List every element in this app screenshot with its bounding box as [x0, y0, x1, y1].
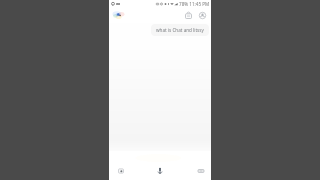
- button[interactable]: Account: [197, 10, 207, 20]
- button[interactable]: Voice search: [153, 164, 167, 178]
- button[interactable]: Google Assistant: [111, 7, 127, 23]
- button[interactable]: what is Chat and litssy: [151, 24, 209, 36]
- staticText: what is Chat and litssy: [156, 27, 204, 33]
- button[interactable]: Google Lens: [115, 165, 127, 177]
- button[interactable]: Shopping bag: [183, 10, 193, 20]
- staticText: 78% 11:45 PM: [179, 1, 210, 7]
- button[interactable]: Keyboard: [195, 165, 207, 177]
